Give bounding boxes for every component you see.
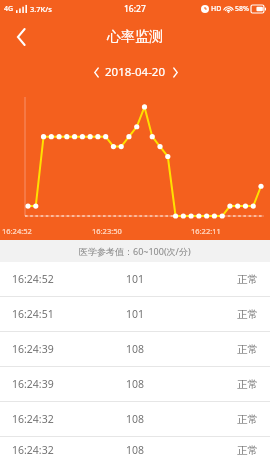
staticText: 3.7K/s (30, 4, 52, 14)
button[interactable]: 16:24:32 (0, 437, 270, 463)
button[interactable]: 16:24:39 (0, 332, 270, 366)
button[interactable]: Back (6, 22, 36, 52)
staticText: 108 (94, 342, 176, 356)
staticText: 16:23:50 (92, 226, 122, 236)
staticText: 16:24:39 (12, 377, 94, 391)
staticText: 医学参考值：60~100(次/分) (79, 245, 191, 257)
staticText: 108 (94, 443, 176, 457)
staticText: 108 (94, 412, 176, 426)
staticText: 2018-04-20 (105, 64, 166, 80)
button[interactable]: Previous day (87, 63, 105, 81)
staticText: 正常 (176, 413, 258, 426)
staticText: 正常 (176, 378, 258, 391)
staticText: 正常 (176, 343, 258, 356)
staticText: 4G (4, 4, 14, 14)
button[interactable]: 16:24:52 (0, 262, 270, 296)
button[interactable]: Next day (166, 63, 184, 81)
button[interactable]: 16:24:51 (0, 297, 270, 331)
staticText: 正常 (176, 273, 258, 286)
staticText: 16:24:52 (2, 226, 32, 236)
button[interactable]: 16:24:39 (0, 367, 270, 401)
staticText: 101 (94, 307, 176, 321)
staticText: 16:24:32 (12, 443, 94, 457)
staticText: HD (211, 4, 222, 14)
staticText: 108 (94, 377, 176, 391)
staticText: 101 (94, 272, 176, 286)
staticText: 58% (235, 4, 249, 14)
staticText: 正常 (176, 308, 258, 321)
staticText: 正常 (176, 444, 258, 457)
staticText: 16:24:52 (12, 272, 94, 286)
staticText: 16:24:32 (12, 412, 94, 426)
staticText: 16:22:11 (191, 226, 221, 236)
button[interactable]: 16:24:32 (0, 402, 270, 436)
staticText: 16:24:39 (12, 342, 94, 356)
staticText: 心率监测 (107, 28, 163, 46)
staticText: 16:27 (124, 3, 146, 15)
staticText: 16:24:51 (12, 307, 94, 321)
